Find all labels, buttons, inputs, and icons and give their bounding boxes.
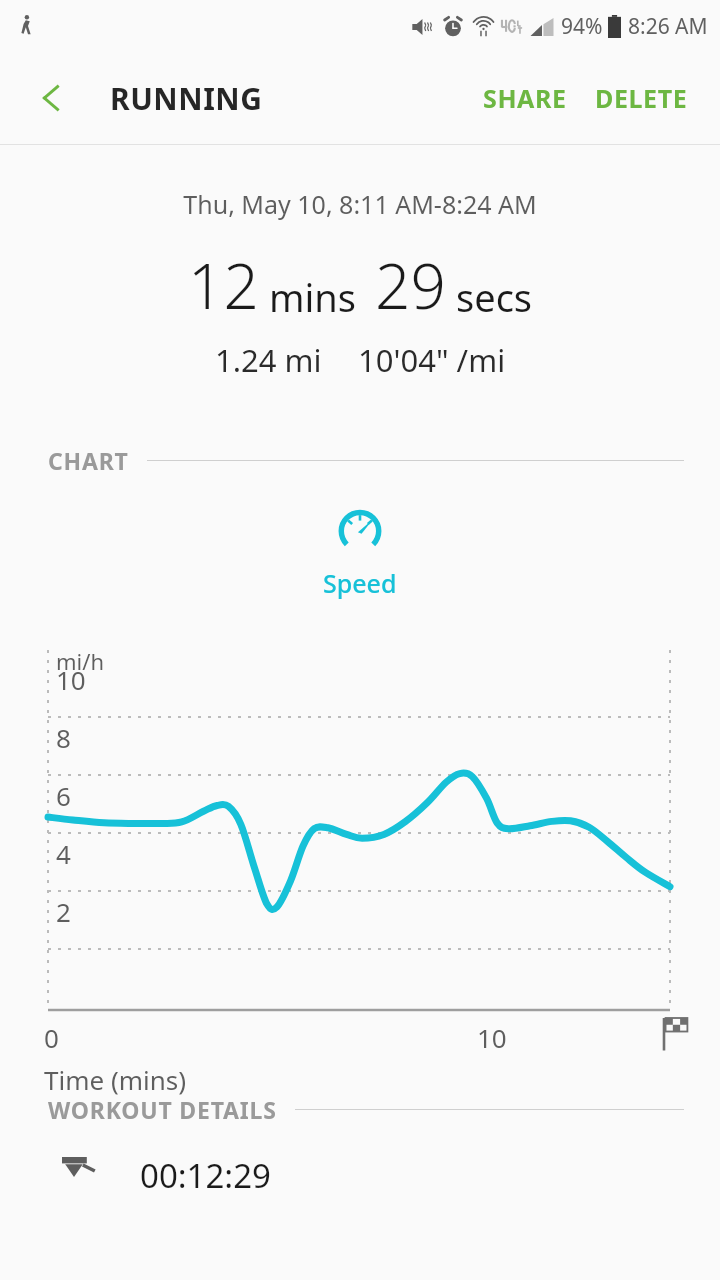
- staticText: 10: [477, 1020, 507, 1055]
- staticText: Speed: [323, 566, 397, 600]
- button[interactable]: DELETE: [581, 67, 702, 129]
- staticText: SHARE: [483, 81, 567, 115]
- staticText: 12: [188, 243, 259, 327]
- staticText: 29: [375, 243, 446, 327]
- staticText: 8: [56, 720, 71, 755]
- button[interactable]: Speed: [0, 502, 720, 600]
- staticText: 94%: [561, 12, 603, 41]
- button[interactable]: 00:12:29: [0, 1153, 720, 1213]
- staticText: mi/h: [56, 646, 105, 676]
- staticText: DELETE: [595, 81, 688, 115]
- staticText: RUNNING: [110, 78, 263, 119]
- button[interactable]: SHARE: [469, 67, 581, 129]
- staticText: 10: [56, 662, 86, 697]
- staticText: secs: [456, 271, 533, 323]
- staticText: 8:26 AM: [628, 12, 708, 41]
- other: Speed: [334, 502, 386, 554]
- staticText: 4: [56, 836, 71, 871]
- staticText: 0: [44, 1020, 59, 1055]
- staticText: 6: [56, 778, 71, 813]
- staticText: Thu, May 10, 8:11 AM-8:24 AM: [0, 187, 720, 221]
- staticText: Time (mins): [44, 1062, 187, 1097]
- staticText: 00:12:29: [140, 1153, 271, 1198]
- staticText: 10'04" /mi: [358, 339, 506, 381]
- staticText: 1.24 mi: [215, 339, 322, 381]
- button[interactable]: Back: [22, 69, 80, 127]
- staticText: mins: [269, 271, 357, 323]
- staticText: CHART: [48, 445, 129, 476]
- staticText: 2: [56, 894, 71, 929]
- staticText: WORKOUT DETAILS: [48, 1094, 277, 1125]
